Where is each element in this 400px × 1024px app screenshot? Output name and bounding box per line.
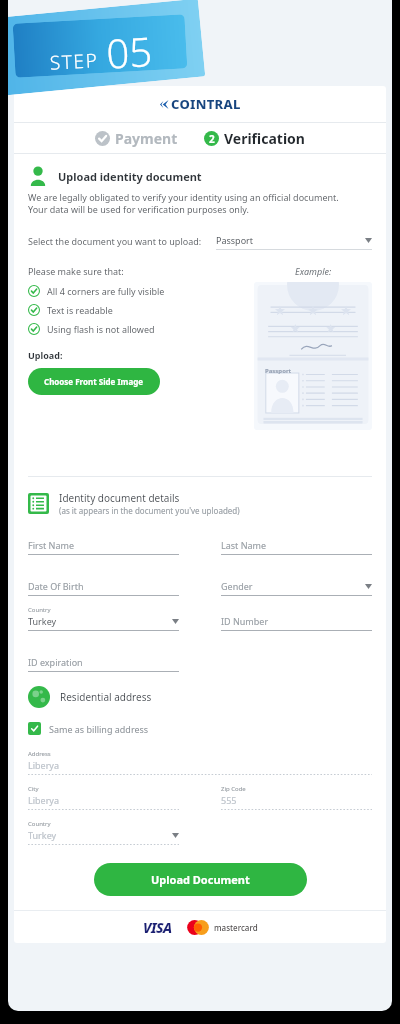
staticText: Address bbox=[28, 750, 51, 758]
staticText: 2 bbox=[209, 132, 215, 146]
button[interactable]: Country bbox=[28, 606, 179, 631]
button[interactable]: Choose Front Side Image bbox=[28, 368, 160, 395]
button[interactable]: 2 bbox=[198, 125, 311, 152]
staticText: Country bbox=[28, 820, 51, 828]
staticText: mastercard bbox=[214, 922, 258, 933]
staticText: Liberya bbox=[28, 794, 179, 806]
staticText: Residential address bbox=[60, 690, 152, 704]
staticText: First Name bbox=[28, 539, 179, 551]
staticText: Date Of Birth bbox=[28, 580, 179, 592]
button[interactable]: City bbox=[28, 785, 179, 810]
staticText: Passport bbox=[265, 367, 292, 375]
staticText: COINTRAL bbox=[171, 95, 241, 113]
staticText: ID Number bbox=[221, 615, 372, 627]
staticText: Using flash is not allowed bbox=[47, 323, 155, 335]
button[interactable]: ID expiration bbox=[28, 647, 179, 672]
staticText: City bbox=[28, 785, 39, 793]
staticText: STEP bbox=[49, 47, 99, 76]
button[interactable]: Zip Code bbox=[221, 785, 372, 810]
staticText: Upload: bbox=[28, 349, 63, 361]
button[interactable]: Country bbox=[28, 820, 179, 845]
staticText: Please make sure that: bbox=[28, 265, 124, 277]
staticText: (as it appears in the document you've up… bbox=[59, 505, 240, 516]
staticText: Turkey bbox=[28, 615, 172, 627]
staticText: Identity document details bbox=[59, 491, 180, 505]
staticText: All 4 corners are fully visible bbox=[47, 285, 165, 297]
button[interactable]: Date Of Birth bbox=[28, 571, 179, 596]
button[interactable]: Last Name bbox=[221, 530, 372, 555]
button[interactable]: Same as billing address bbox=[28, 720, 149, 737]
staticText: Passport bbox=[216, 234, 365, 246]
staticText: Liberya bbox=[28, 759, 372, 771]
staticText: Example: bbox=[295, 265, 332, 277]
staticText: Zip Code bbox=[221, 785, 246, 793]
button[interactable]: Payment bbox=[89, 125, 184, 152]
staticText: Payment bbox=[115, 129, 178, 148]
staticText: 555 bbox=[221, 794, 372, 806]
button[interactable]: Upload Document bbox=[94, 863, 307, 896]
button[interactable]: Passport bbox=[216, 234, 372, 250]
staticText: Your data will be used for verification … bbox=[28, 203, 249, 215]
staticText: Same as billing address bbox=[49, 723, 149, 735]
button[interactable]: Gender bbox=[221, 571, 372, 596]
staticText: Text is readable bbox=[47, 304, 113, 316]
staticText: 05 bbox=[105, 23, 153, 73]
staticText: Gender bbox=[221, 580, 365, 592]
button[interactable]: ID Number bbox=[221, 606, 372, 631]
staticText: VISA bbox=[143, 918, 172, 937]
staticText: Upload identity document bbox=[58, 169, 202, 184]
staticText: ID expiration bbox=[28, 656, 179, 668]
staticText: Select the document you want to upload: bbox=[28, 235, 202, 247]
staticText: Choose Front Side Image bbox=[44, 376, 144, 387]
staticText: Verification bbox=[224, 129, 305, 148]
button[interactable]: First Name bbox=[28, 530, 179, 555]
staticText: Country bbox=[28, 606, 51, 614]
staticText: Turkey bbox=[28, 829, 172, 841]
staticText: We are legally obligated to verify your … bbox=[28, 191, 339, 203]
staticText: Last Name bbox=[221, 539, 372, 551]
button[interactable]: Address bbox=[28, 750, 372, 775]
staticText: Upload Document bbox=[151, 872, 250, 887]
